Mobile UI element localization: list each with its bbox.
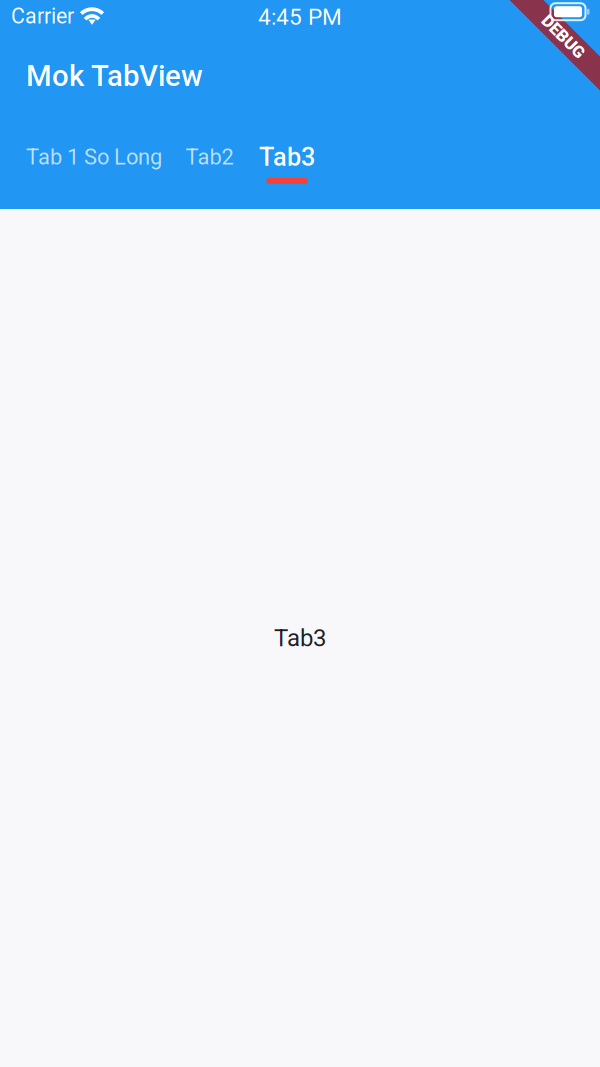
button[interactable]: Tab 1 So Long	[12, 146, 176, 194]
staticText: Tab3	[274, 624, 326, 652]
staticText: Tab 1 So Long	[26, 144, 162, 170]
staticText: Tab2	[185, 144, 233, 170]
button[interactable]: Tab3	[243, 146, 331, 194]
staticText: Carrier	[11, 4, 74, 29]
staticText: DEBUG	[536, 27, 589, 46]
staticText: Mok TabView	[26, 59, 203, 93]
staticText: Tab3	[259, 142, 315, 172]
staticText: 4:45 PM	[258, 4, 342, 30]
button[interactable]: Tab2	[169, 146, 250, 194]
